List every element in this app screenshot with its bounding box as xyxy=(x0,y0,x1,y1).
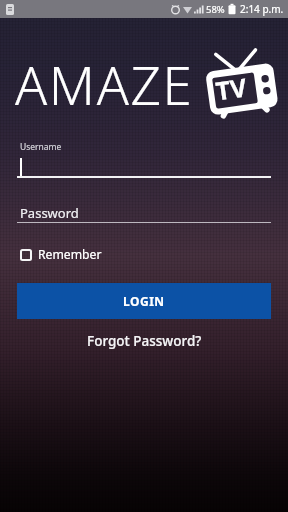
staticText: Remember xyxy=(38,246,102,263)
staticText: 2:14 p.m. xyxy=(240,2,284,16)
button[interactable]: Remember xyxy=(20,246,102,263)
button[interactable]: Forgot Password? xyxy=(87,332,202,350)
staticText: AMAZE xyxy=(15,48,194,120)
button[interactable]: LOGIN xyxy=(17,283,271,319)
staticText: Forgot Password? xyxy=(87,332,202,350)
staticText: Password xyxy=(20,204,79,222)
staticText: 58% xyxy=(206,3,225,16)
staticText: LOGIN xyxy=(123,293,165,309)
staticText: Username xyxy=(20,141,62,153)
staticText: TV xyxy=(213,70,249,108)
